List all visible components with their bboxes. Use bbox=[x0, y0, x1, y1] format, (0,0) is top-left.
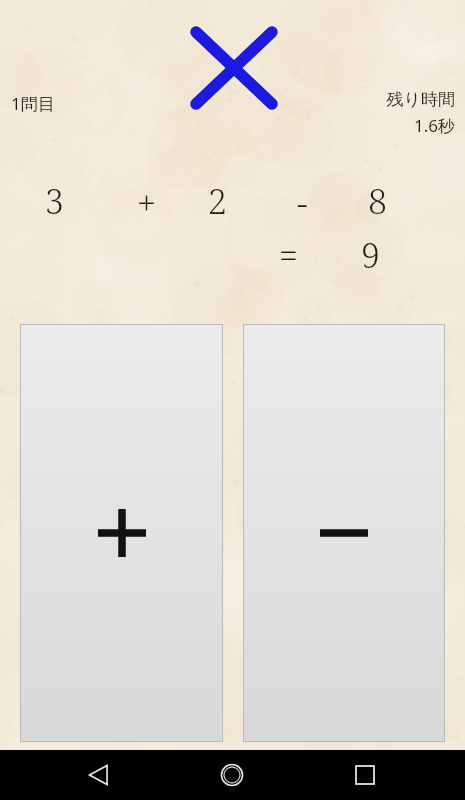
staticText: = bbox=[279, 232, 299, 278]
staticText: 1問目 bbox=[11, 92, 55, 115]
staticText: 1.6秒 bbox=[413, 114, 455, 137]
staticText: 2 bbox=[208, 178, 228, 224]
staticText: + bbox=[137, 180, 157, 226]
staticText: 8 bbox=[368, 178, 388, 224]
staticText: 残り時間 bbox=[386, 89, 455, 110]
staticText: - bbox=[297, 180, 308, 226]
button[interactable]: Home bbox=[207, 750, 257, 800]
staticText: 3 bbox=[45, 178, 65, 224]
button[interactable]: Plus bbox=[20, 324, 223, 742]
button[interactable]: Minus bbox=[243, 324, 445, 742]
staticText: 9 bbox=[361, 232, 381, 278]
button[interactable]: Recents bbox=[340, 750, 390, 800]
button[interactable]: Back bbox=[74, 750, 124, 800]
